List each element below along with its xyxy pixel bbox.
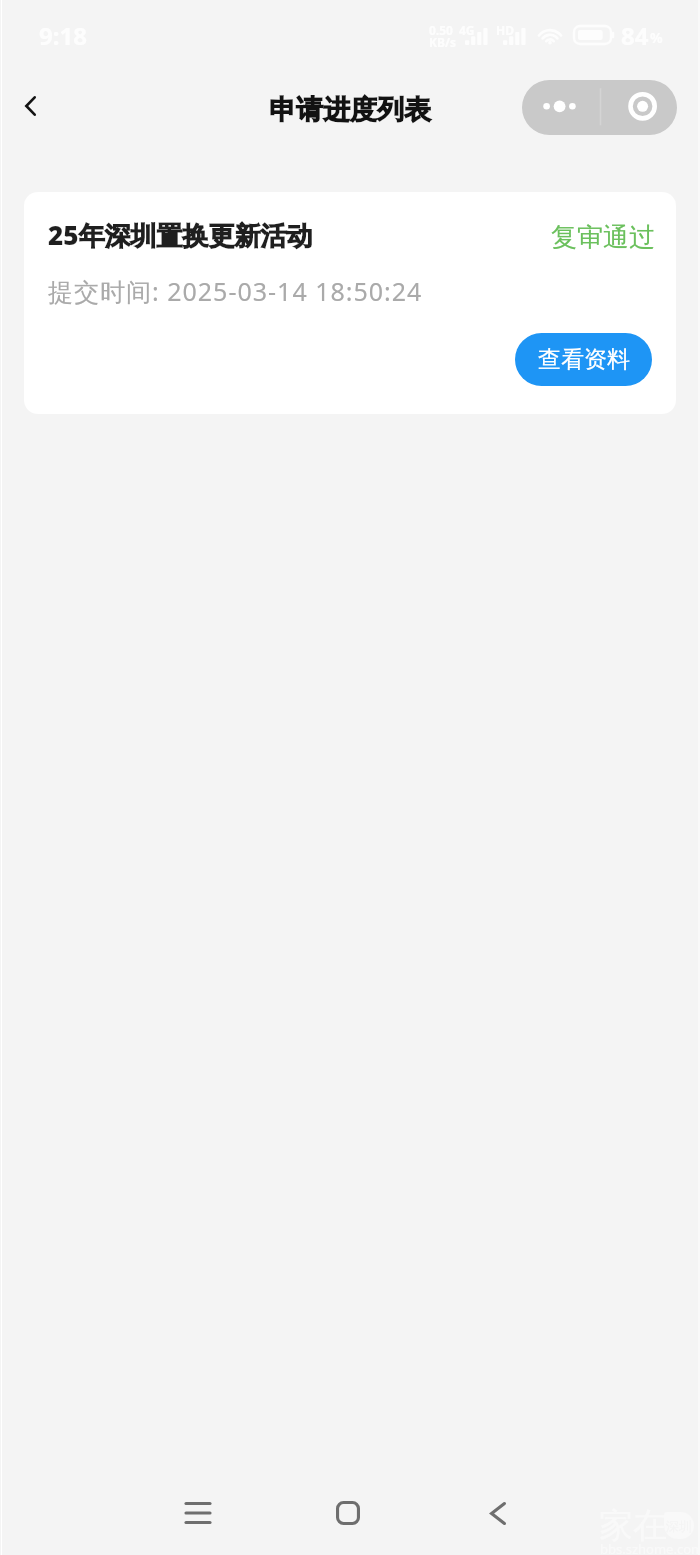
button[interactable]: Back <box>470 1485 526 1541</box>
staticText: 复审通过 <box>551 221 655 254</box>
staticText: 0.50 <box>429 22 453 38</box>
staticText: 申请进度列表 <box>269 93 431 127</box>
button[interactable]: 25年深圳置换更新活动 <box>24 192 676 414</box>
button[interactable]: Close mini program <box>601 80 677 135</box>
staticText: HD <box>496 22 514 38</box>
staticText: 提交时间: 2025-03-14 18:50:24 <box>48 274 423 308</box>
staticText: 84 <box>621 19 649 52</box>
button[interactable]: More options <box>522 80 600 135</box>
button[interactable]: 查看资料 <box>515 333 652 386</box>
staticText: 25年深圳置换更新活动 <box>48 217 313 253</box>
staticText: 4G <box>459 22 475 38</box>
button[interactable]: Recent apps <box>170 1485 226 1541</box>
staticText: KB/s <box>429 34 456 50</box>
button[interactable]: Home <box>320 1485 376 1541</box>
staticText: 9:18 <box>39 19 87 52</box>
button[interactable]: Back <box>6 82 54 130</box>
staticText: % <box>650 28 663 47</box>
staticText: 查看资料 <box>538 345 630 374</box>
